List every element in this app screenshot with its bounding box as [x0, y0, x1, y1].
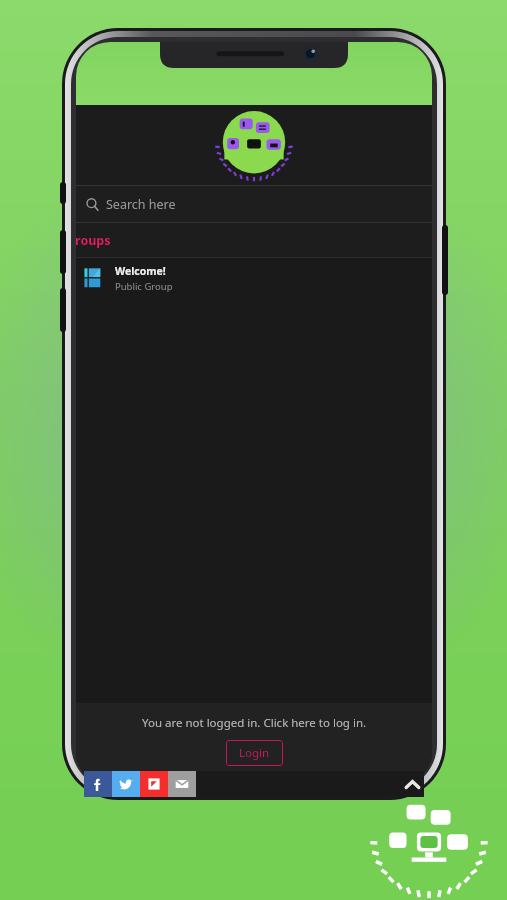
button[interactable]: Scroll to top	[400, 772, 424, 796]
button[interactable]: Login	[226, 740, 283, 766]
staticText: Groups	[76, 232, 111, 249]
button[interactable]: Search here	[76, 186, 432, 222]
button[interactable]: Share via Email	[168, 771, 196, 797]
staticText: Public Group	[115, 280, 173, 293]
staticText: Welcome!	[115, 264, 166, 278]
button[interactable]: You are not logged in. Click here to log…	[142, 715, 367, 731]
staticText: Search here	[106, 196, 176, 213]
staticText: You are not logged in. Click here to log…	[142, 715, 367, 731]
button[interactable]: Share on Flipboard	[140, 771, 168, 797]
button[interactable]: Welcome!	[76, 258, 432, 298]
button[interactable]: Share on Facebook	[84, 771, 112, 797]
button[interactable]: CrossTalk.Space home	[215, 111, 293, 179]
button[interactable]: Share on Twitter	[112, 771, 140, 797]
staticText: Login	[239, 745, 270, 761]
